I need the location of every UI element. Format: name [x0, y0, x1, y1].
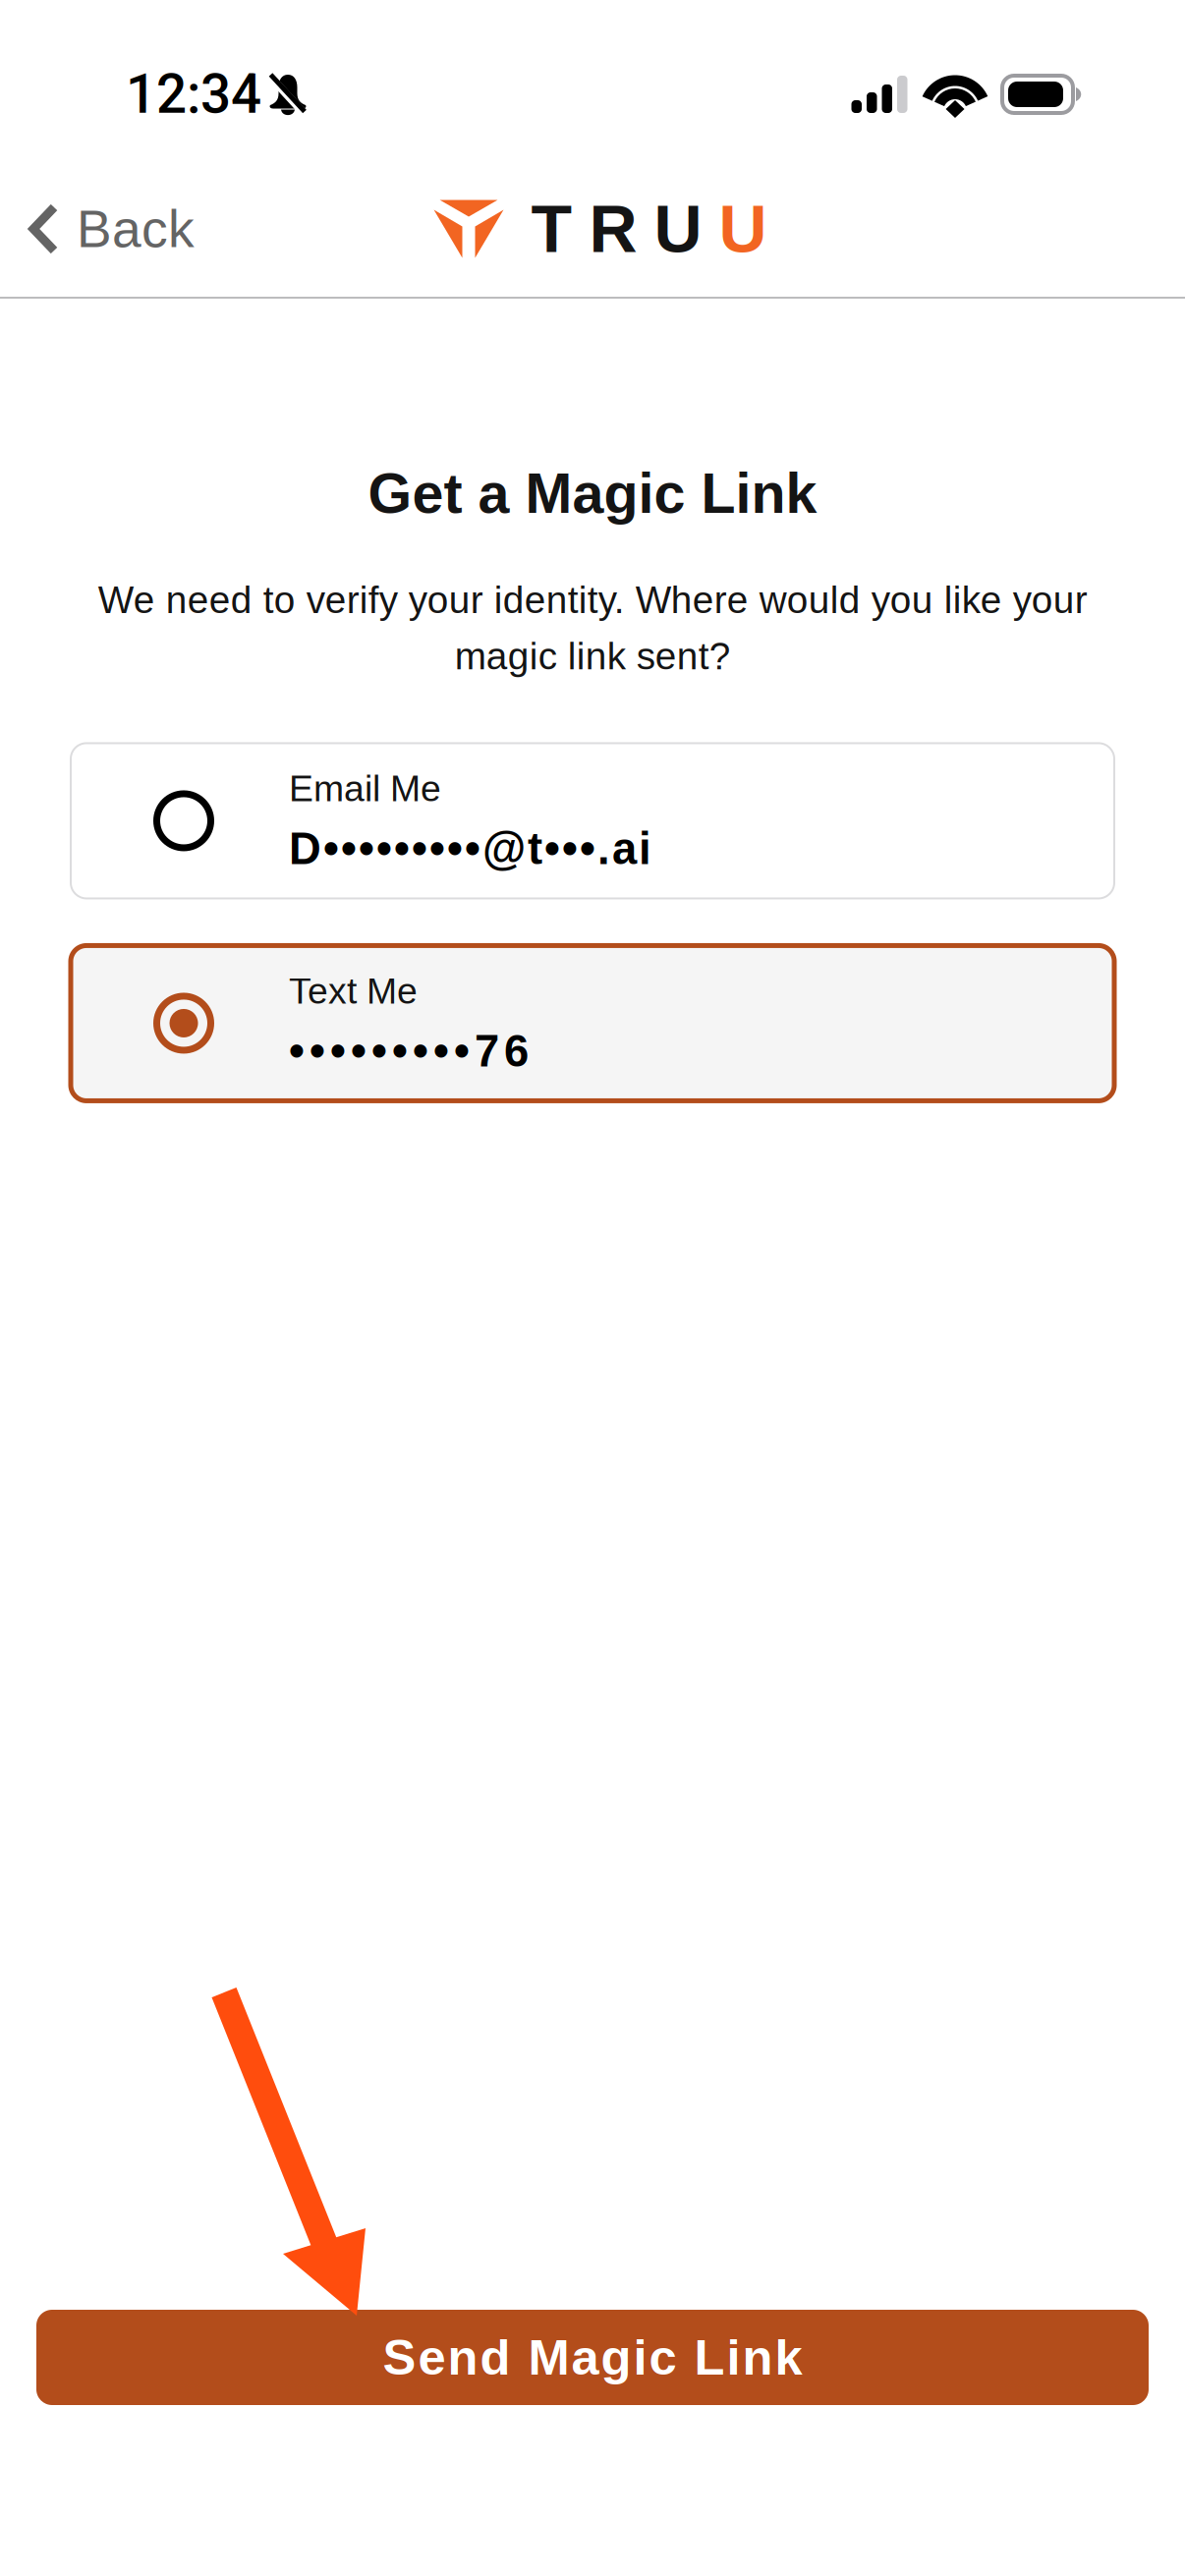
button[interactable]: Send Magic Link [36, 2310, 1149, 2405]
staticText: Text Me [289, 970, 418, 1011]
staticText: Get a Magic Link [368, 462, 817, 525]
staticText: Back [77, 200, 195, 258]
staticText: •••••••••76 [289, 1026, 529, 1076]
button[interactable]: Email Me [71, 743, 1114, 898]
staticText: R [589, 192, 637, 266]
staticText: Send Magic Link [383, 2330, 802, 2385]
staticText: U [654, 192, 702, 266]
staticText: T [531, 192, 572, 266]
staticText: D•••••••••@t•••.ai [289, 824, 651, 874]
staticText: U [719, 192, 767, 266]
staticText: We need to verify your identity. Where w… [98, 579, 1087, 677]
staticText: 12:34 [126, 63, 261, 126]
button[interactable]: Back [0, 186, 195, 272]
staticText: Email Me [289, 768, 441, 809]
button[interactable]: Text Me [71, 946, 1114, 1101]
